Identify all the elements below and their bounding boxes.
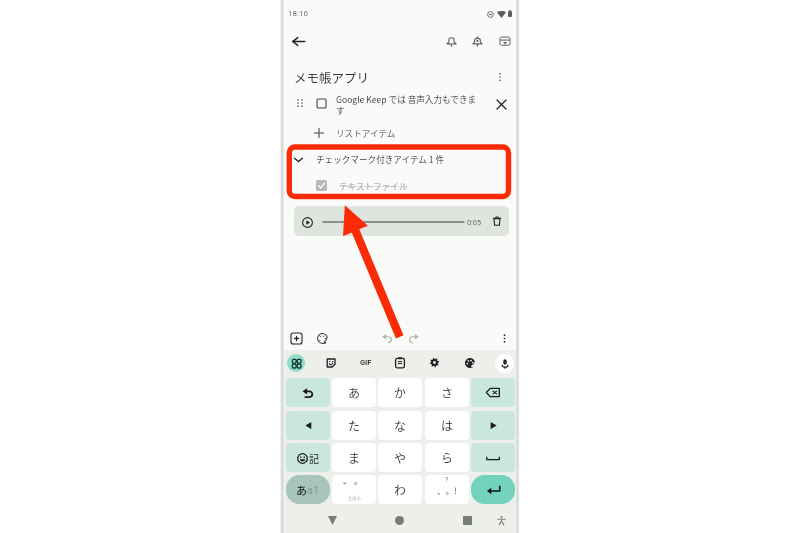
button[interactable]: Add (287, 329, 305, 347)
button[interactable]: ゛゜ (332, 475, 376, 504)
button[interactable] (286, 378, 330, 407)
staticText: あ (296, 482, 307, 498)
button[interactable]: Accessibility (493, 512, 510, 529)
button[interactable]: Delete recording (490, 214, 504, 228)
button[interactable]: リストアイテム (314, 125, 434, 140)
button[interactable]: Recents (459, 512, 476, 529)
button[interactable]: か (378, 378, 422, 407)
staticText: メモ帳アプリ (294, 68, 370, 86)
staticText: 記 (309, 451, 319, 465)
button[interactable]: More options (491, 68, 509, 86)
button[interactable]: わ (378, 475, 422, 504)
button[interactable]: GIF (355, 354, 377, 371)
button[interactable]: Voice input (495, 354, 514, 373)
button[interactable]: Archive (494, 31, 515, 52)
button[interactable]: た (332, 411, 376, 440)
staticText: テキストファイル (339, 180, 408, 192)
staticText: Google Keep では 音声入力もできます (336, 93, 483, 117)
staticText: リストアイテム (336, 127, 396, 139)
button[interactable]: Pin (441, 31, 462, 52)
staticText: 大中小 (348, 495, 361, 501)
staticText: ? (445, 476, 449, 484)
button[interactable]: さ (425, 378, 469, 407)
staticText: な (394, 417, 407, 434)
staticText: 0:05 (467, 218, 482, 227)
button[interactable]: Toolbox (287, 354, 305, 372)
button[interactable]: Back (324, 512, 341, 529)
button[interactable]: Theme (461, 354, 478, 371)
staticText: あ (348, 384, 361, 401)
staticText: は (441, 417, 454, 434)
button[interactable]: Play (299, 214, 315, 230)
button[interactable]: ら (425, 443, 469, 472)
button[interactable]: ? (425, 475, 469, 504)
button[interactable]: Clipboard (391, 354, 408, 371)
staticText: 18:10 (288, 9, 308, 18)
staticText: や (394, 449, 407, 466)
button[interactable]: Background options (313, 329, 331, 347)
button[interactable]: や (378, 443, 422, 472)
button[interactable]: な (378, 411, 422, 440)
button[interactable]: Checkbox (314, 96, 328, 110)
button[interactable]: Remove item (493, 96, 509, 112)
button[interactable]: あ (286, 475, 330, 504)
button[interactable]: Stickers (322, 354, 339, 371)
button[interactable] (471, 443, 515, 472)
button[interactable] (471, 475, 515, 504)
staticText: わ (394, 481, 407, 498)
staticText: ゛゜ (343, 479, 365, 495)
button[interactable]: は (425, 411, 469, 440)
staticText: さ (441, 384, 454, 401)
staticText: チェックマーク付きアイテム 1 件 (316, 153, 445, 165)
button[interactable]: テキストファイル (316, 178, 466, 193)
button[interactable] (286, 411, 330, 440)
button[interactable]: More (495, 329, 513, 347)
button[interactable]: Settings (426, 354, 443, 371)
staticText: … (445, 496, 450, 503)
staticText: ま (348, 449, 361, 466)
button[interactable]: ま (332, 443, 376, 472)
button[interactable]: Undo (378, 329, 396, 347)
button[interactable]: Redo (404, 329, 422, 347)
button[interactable]: Back (288, 31, 309, 52)
staticText: GIF (360, 358, 372, 367)
staticText: か (394, 384, 407, 401)
staticText: 、。! (437, 484, 457, 496)
button[interactable]: あ (332, 378, 376, 407)
button[interactable] (471, 411, 515, 440)
button[interactable]: チェックマーク付きアイテム 1 件 (293, 151, 493, 167)
staticText: た (348, 417, 361, 434)
staticText: a1 (307, 484, 320, 497)
button[interactable] (471, 378, 515, 407)
button[interactable]: Reminder (467, 31, 488, 52)
button[interactable]: 記 (286, 443, 330, 472)
staticText: ら (441, 449, 454, 466)
button[interactable]: Home (391, 512, 408, 529)
